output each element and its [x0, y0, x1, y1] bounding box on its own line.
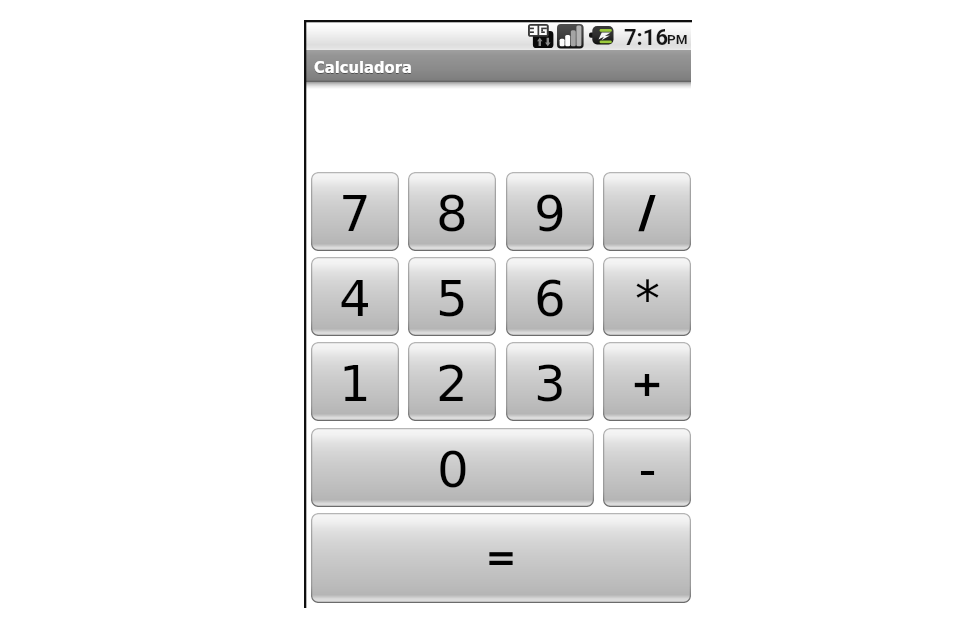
- staticText: 8: [436, 185, 468, 243]
- staticText: 4: [339, 270, 371, 328]
- staticText: 3: [534, 355, 566, 413]
- staticText: 2: [436, 355, 468, 413]
- button[interactable]: 4: [311, 257, 399, 336]
- staticText: -: [638, 441, 657, 499]
- staticText: 0: [437, 441, 469, 499]
- button[interactable]: 7: [311, 172, 399, 251]
- staticText: 9: [534, 185, 566, 243]
- button[interactable]: 9: [506, 172, 594, 251]
- other: Clock 7:16 PM: [624, 25, 669, 49]
- button[interactable]: [311, 513, 691, 603]
- button[interactable]: Calculadora: [304, 50, 691, 82]
- button[interactable]: 2: [408, 342, 496, 421]
- button[interactable]: 8: [408, 172, 496, 251]
- staticText: Calculadora: [314, 59, 412, 78]
- button[interactable]: Battery charging: [589, 26, 614, 45]
- staticText: 6: [534, 270, 566, 328]
- button[interactable]: 3: [506, 342, 594, 421]
- button[interactable]: -: [603, 428, 691, 507]
- button[interactable]: 3G data connection: [528, 24, 554, 49]
- button[interactable]: [603, 342, 691, 421]
- button[interactable]: 5: [408, 257, 496, 336]
- button[interactable]: 0: [311, 428, 594, 507]
- staticText: 1: [339, 355, 371, 413]
- staticText: 7: [339, 185, 371, 243]
- button[interactable]: *: [603, 257, 691, 336]
- button[interactable]: 1: [311, 342, 399, 421]
- staticText: 7:16: [624, 25, 669, 49]
- staticText: 5: [436, 270, 468, 328]
- button[interactable]: 6: [506, 257, 594, 336]
- button[interactable]: Mobile signal strength: [557, 24, 584, 49]
- staticText: PM: [667, 31, 688, 47]
- staticText: Calculadora: [314, 58, 412, 77]
- staticText: *: [635, 270, 660, 328]
- button[interactable]: [603, 172, 691, 251]
